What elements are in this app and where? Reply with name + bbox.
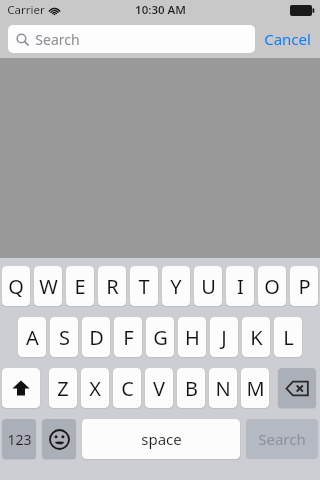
- button[interactable]: H: [178, 317, 206, 357]
- button[interactable]: D: [82, 317, 110, 357]
- button[interactable]: C: [113, 368, 141, 408]
- button[interactable]: F: [114, 317, 142, 357]
- staticText: Cancel: [264, 29, 311, 49]
- staticText: Q: [8, 273, 24, 300]
- staticText: I: [237, 273, 244, 300]
- staticText: B: [185, 375, 198, 402]
- staticText: C: [121, 375, 134, 402]
- staticText: W: [39, 273, 58, 300]
- staticText: K: [250, 324, 263, 351]
- staticText: R: [106, 273, 119, 300]
- button[interactable]: P: [290, 266, 318, 306]
- button[interactable]: W: [34, 266, 62, 306]
- button[interactable]: space: [82, 419, 240, 459]
- button[interactable]: L: [274, 317, 302, 357]
- button[interactable]: Z: [49, 368, 77, 408]
- button[interactable]: Y: [162, 266, 190, 306]
- staticText: D: [89, 324, 104, 351]
- staticText: S: [59, 324, 70, 351]
- staticText: M: [246, 375, 265, 402]
- staticText: E: [74, 273, 86, 300]
- staticText: Search: [35, 30, 80, 49]
- button[interactable]: O: [258, 266, 286, 306]
- button[interactable]: Backspace: [278, 368, 316, 408]
- staticText: X: [89, 375, 101, 402]
- button[interactable]: E: [66, 266, 94, 306]
- staticText: L: [283, 324, 294, 351]
- staticText: Carrier: [7, 2, 45, 18]
- staticText: A: [26, 324, 39, 351]
- staticText: Z: [57, 375, 69, 402]
- staticText: 10:30 AM: [135, 2, 186, 18]
- button[interactable]: Q: [2, 266, 30, 306]
- button[interactable]: G: [146, 317, 174, 357]
- button[interactable]: 123: [2, 419, 36, 459]
- staticText: 123: [7, 430, 32, 449]
- button[interactable]: I: [226, 266, 254, 306]
- staticText: Search: [258, 429, 306, 449]
- button[interactable]: Emoji: [42, 419, 76, 459]
- button[interactable]: R: [98, 266, 126, 306]
- button[interactable]: A: [18, 317, 46, 357]
- staticText: space: [141, 429, 182, 449]
- staticText: N: [215, 375, 231, 402]
- button[interactable]: Search: [8, 25, 255, 53]
- button[interactable]: N: [209, 368, 237, 408]
- staticText: Y: [170, 273, 182, 300]
- button[interactable]: K: [242, 317, 270, 357]
- staticText: V: [153, 375, 165, 402]
- button[interactable]: M: [241, 368, 269, 408]
- button[interactable]: S: [50, 317, 78, 357]
- staticText: P: [298, 273, 311, 300]
- staticText: T: [138, 273, 150, 300]
- button[interactable]: J: [210, 317, 238, 357]
- staticText: U: [201, 273, 216, 300]
- staticText: J: [221, 324, 227, 351]
- button[interactable]: V: [145, 368, 173, 408]
- staticText: H: [185, 324, 200, 351]
- button[interactable]: X: [81, 368, 109, 408]
- staticText: O: [264, 273, 280, 300]
- button[interactable]: B: [177, 368, 205, 408]
- button[interactable]: Search: [246, 419, 318, 459]
- button[interactable]: U: [194, 266, 222, 306]
- staticText: F: [123, 324, 134, 351]
- button[interactable]: Shift: [2, 368, 40, 408]
- button[interactable]: T: [130, 266, 158, 306]
- staticText: G: [153, 324, 168, 351]
- button[interactable]: Cancel: [255, 29, 320, 49]
